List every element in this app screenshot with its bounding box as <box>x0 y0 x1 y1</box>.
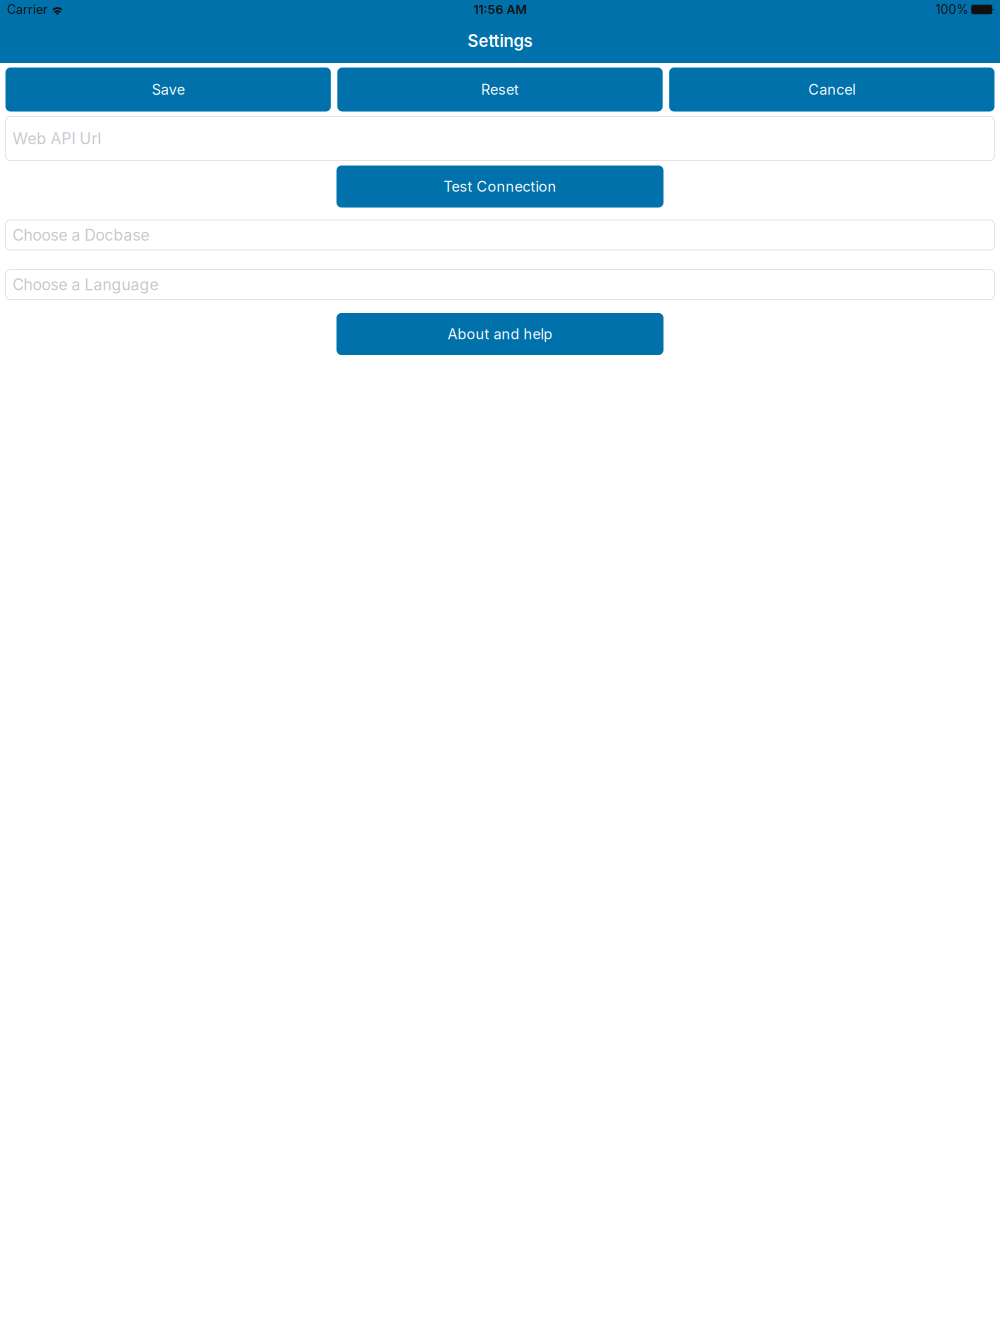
button[interactable]: About and help <box>336 313 663 355</box>
button[interactable]: Choose a Docbase <box>5 220 994 250</box>
staticText: Choose a Docbase <box>12 226 149 244</box>
staticText: Test Connection <box>443 178 556 195</box>
button[interactable]: Web API Url <box>5 116 994 160</box>
button[interactable]: Test Connection <box>336 165 663 207</box>
button[interactable]: Save <box>5 67 331 111</box>
staticText: 100% <box>935 2 968 17</box>
staticText: Choose a Language <box>12 275 158 294</box>
staticText: Carrier <box>7 2 48 17</box>
staticText: About and help <box>447 325 552 343</box>
staticText: 11:56 AM <box>473 2 526 17</box>
staticText: Cancel <box>808 81 855 98</box>
staticText: Settings <box>467 31 532 51</box>
staticText: Save <box>152 81 185 98</box>
button[interactable]: Cancel <box>669 67 994 111</box>
button[interactable]: Choose a Language <box>5 269 994 299</box>
button[interactable]: Reset <box>337 67 663 111</box>
staticText: Web API Url <box>12 129 101 148</box>
staticText: Reset <box>481 81 519 98</box>
